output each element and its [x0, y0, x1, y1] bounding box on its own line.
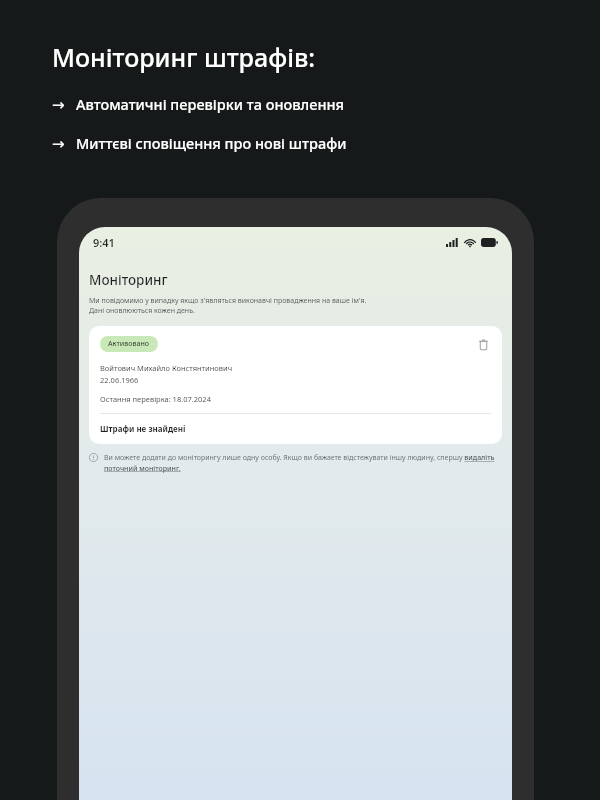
- staticText: Ми повідомимо у випадку якщо з'являться …: [89, 296, 367, 306]
- staticText: Остання перевірка: 18.07.2024: [100, 394, 211, 404]
- staticText: →: [52, 135, 65, 152]
- staticText: Войтович Михайло Констянтинович: [100, 363, 233, 373]
- staticText: 9:41: [93, 235, 115, 250]
- staticText: Ви можете додати до моніторингу лише одн…: [104, 453, 502, 473]
- staticText: Активовано: [108, 339, 150, 349]
- staticText: Штрафи не знайдені: [100, 423, 186, 434]
- button[interactable]: Ви можете додати до моніторингу лише одн…: [89, 453, 502, 473]
- staticText: 22.06.1966: [100, 375, 139, 385]
- staticText: Миттєві сповіщення про нові штрафи: [76, 133, 347, 153]
- staticText: Моніторинг: [89, 271, 168, 289]
- staticText: Моніторинг штрафів:: [52, 40, 316, 74]
- button[interactable]: Активовано: [89, 326, 502, 444]
- button[interactable]: Активовано: [100, 336, 158, 352]
- button[interactable]: Видалити моніторинг: [475, 336, 491, 352]
- staticText: Автоматичні перевірки та оновлення: [76, 94, 345, 114]
- staticText: →: [52, 96, 65, 113]
- staticText: Дані оновлюються кожен день.: [89, 306, 195, 316]
